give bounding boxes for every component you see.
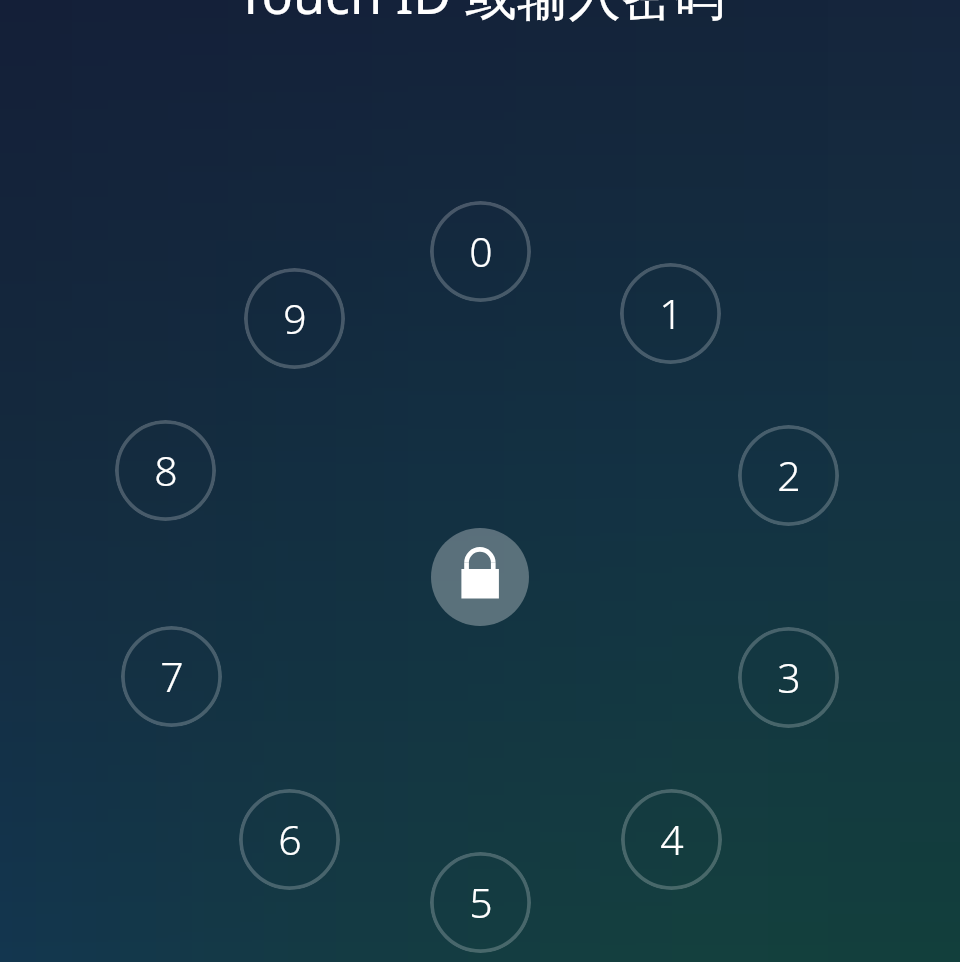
staticText: 3 [777,649,801,705]
button[interactable]: 6 [239,789,340,890]
staticText: 9 [283,290,307,346]
staticText: 0 [469,223,493,279]
staticText: 2 [777,447,801,503]
button[interactable]: 1 [620,263,721,364]
button[interactable]: 3 [738,627,839,728]
button[interactable]: 4 [621,789,722,890]
staticText: 6 [278,811,302,867]
button[interactable]: Unlock [431,528,529,626]
staticText: 7 [160,648,184,704]
button[interactable]: 2 [738,425,839,526]
button[interactable]: 8 [115,420,216,521]
button[interactable]: 9 [244,268,345,369]
staticText: 5 [469,874,493,930]
button[interactable]: 0 [430,201,531,302]
staticText: 4 [660,811,684,867]
staticText: 1 [659,285,683,341]
button[interactable]: 5 [430,852,531,953]
button[interactable]: 7 [121,626,222,727]
staticText: 8 [154,442,178,498]
staticText: Touch ID 或输入密码 [236,0,725,29]
